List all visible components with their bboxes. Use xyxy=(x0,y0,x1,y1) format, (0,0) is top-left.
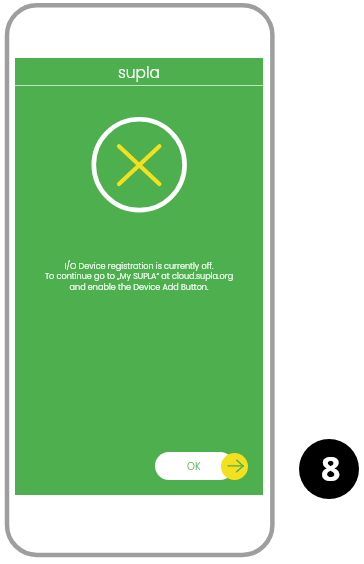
staticText: OK xyxy=(187,459,201,473)
staticText: 8 xyxy=(321,445,341,491)
button[interactable]: OK xyxy=(155,452,234,480)
staticText: I/O Device registration is currently off… xyxy=(15,260,263,293)
staticText: supla xyxy=(118,62,160,84)
button[interactable]: Next xyxy=(221,453,248,480)
